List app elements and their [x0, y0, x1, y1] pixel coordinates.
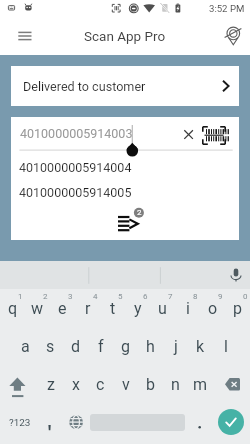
- staticText: d: [71, 337, 81, 356]
- staticText: w: [31, 299, 44, 318]
- staticText: 2: [137, 208, 142, 217]
- staticText: q: [8, 299, 18, 318]
- button[interactable]: m: [188, 365, 213, 403]
- button[interactable]: Location off: [216, 17, 250, 55]
- staticText: l: [224, 337, 228, 356]
- staticText: r: [85, 299, 91, 318]
- staticText: 5: [118, 292, 123, 301]
- button[interactable]: ?123: [0, 403, 38, 441]
- button[interactable]: v: [113, 365, 138, 403]
- button[interactable]: z: [38, 365, 63, 403]
- staticText: f: [98, 337, 104, 356]
- button[interactable]: t: [100, 289, 125, 327]
- button[interactable]: Delivered to customer: [11, 66, 239, 106]
- button[interactable]: Clear text: [177, 123, 199, 145]
- button[interactable]: Comma: [38, 403, 62, 441]
- staticText: 8: [193, 292, 198, 301]
- staticText: k: [196, 337, 205, 356]
- staticText: 4010000005914003: [20, 126, 133, 141]
- staticText: e: [58, 299, 67, 318]
- button[interactable]: b: [138, 365, 163, 403]
- button[interactable]: w: [25, 289, 50, 327]
- staticText: z: [47, 375, 55, 394]
- staticText: v: [122, 375, 130, 394]
- staticText: n: [171, 375, 180, 394]
- staticText: j: [174, 337, 178, 356]
- button[interactable]: p: [225, 289, 250, 327]
- button[interactable]: g: [113, 327, 138, 365]
- button[interactable]: s: [38, 327, 63, 365]
- button[interactable]: Backspace: [213, 365, 250, 403]
- button[interactable]: Scan barcode: [200, 121, 228, 149]
- button[interactable]: o: [200, 289, 225, 327]
- staticText: s: [46, 337, 55, 356]
- staticText: 3:52 PM: [209, 3, 245, 14]
- button[interactable]: Change language: [62, 403, 89, 441]
- button[interactable]: Voice input: [224, 263, 248, 287]
- button[interactable]: n: [163, 365, 188, 403]
- button[interactable]: h: [138, 327, 163, 365]
- staticText: 2: [43, 292, 48, 301]
- staticText: c: [96, 375, 105, 394]
- button[interactable]: f: [88, 327, 113, 365]
- staticText: 9: [218, 292, 223, 301]
- button[interactable]: k: [188, 327, 213, 365]
- staticText: 1: [18, 292, 23, 301]
- staticText: h: [146, 337, 155, 356]
- staticText: x: [72, 375, 80, 394]
- staticText: t: [110, 299, 116, 318]
- staticText: g: [121, 337, 130, 356]
- button[interactable]: e: [50, 289, 75, 327]
- staticText: p: [233, 299, 242, 318]
- button[interactable]: i: [175, 289, 200, 327]
- staticText: 3: [68, 292, 73, 301]
- staticText: 7: [168, 292, 173, 301]
- staticText: y: [134, 299, 142, 318]
- staticText: 4: [93, 292, 98, 301]
- button[interactable]: Shift: [0, 365, 38, 403]
- button[interactable]: c: [88, 365, 113, 403]
- button[interactable]: y: [125, 289, 150, 327]
- staticText: b: [146, 375, 155, 394]
- button[interactable]: Period: [187, 403, 211, 441]
- staticText: u: [158, 299, 167, 318]
- button[interactable]: u: [150, 289, 175, 327]
- staticText: ?123: [9, 417, 31, 429]
- staticText: 6: [143, 292, 148, 301]
- button[interactable]: a: [13, 327, 38, 365]
- staticText: 4010000005914005: [19, 185, 132, 200]
- button[interactable]: j: [163, 327, 188, 365]
- staticText: 0: [243, 292, 248, 301]
- button[interactable]: d: [63, 327, 88, 365]
- button[interactable]: r: [75, 289, 100, 327]
- staticText: Scan App Pro: [84, 28, 166, 44]
- button[interactable]: l: [213, 327, 238, 365]
- button[interactable]: Enter: [211, 403, 250, 441]
- staticText: a: [21, 337, 30, 356]
- staticText: o: [208, 299, 218, 318]
- staticText: Delivered to customer: [23, 79, 146, 94]
- button[interactable]: Submit list, 2 items: [118, 214, 140, 234]
- staticText: 4010000005914004: [19, 160, 132, 175]
- staticText: i: [186, 299, 190, 318]
- button[interactable]: q: [0, 289, 25, 327]
- staticText: m: [193, 375, 208, 394]
- button[interactable]: x: [63, 365, 88, 403]
- button[interactable]: Open navigation menu: [0, 17, 44, 55]
